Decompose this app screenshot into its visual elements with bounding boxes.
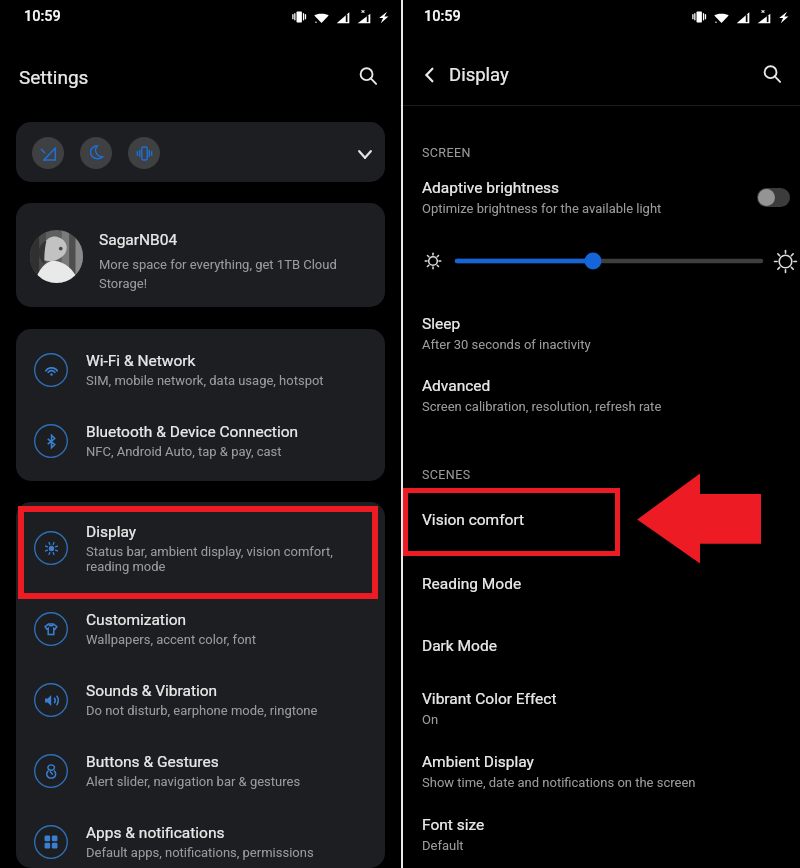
button[interactable]: Back [400, 34, 800, 105]
staticText: Ambient Display [422, 752, 534, 771]
staticText: Display [86, 522, 137, 541]
button[interactable]: Adaptive brightness [400, 170, 800, 220]
button[interactable]: Do not disturb [80, 137, 112, 169]
button[interactable]: Vision comfort [400, 503, 800, 539]
button[interactable]: SagarNB04 [16, 203, 385, 307]
staticText: Reading Mode [422, 574, 522, 593]
staticText: Sleep [422, 314, 461, 333]
staticText: Display [449, 63, 509, 86]
staticText: 10:59 [424, 7, 461, 25]
staticText: Optimize brightness for the available li… [422, 200, 662, 216]
button[interactable]: Expand [350, 139, 380, 169]
staticText: Default apps, notifications, permissions [86, 845, 314, 860]
staticText: Status bar, ambient display, vision comf… [86, 544, 333, 574]
staticText: Settings [19, 66, 89, 89]
button[interactable]: Ambient Display [400, 745, 800, 800]
staticText: After 30 seconds of inactivity [422, 336, 591, 352]
button[interactable]: Airplane mode [32, 137, 64, 169]
staticText: Sounds & Vibration [86, 681, 218, 700]
staticText: Alert slider, navigation bar & gestures [86, 774, 301, 789]
button[interactable]: Search [753, 55, 791, 93]
staticText: SCREEN [422, 145, 471, 160]
staticText: Dark Mode [422, 636, 497, 655]
staticText: Apps & notifications [86, 823, 225, 842]
button[interactable]: Advanced [400, 369, 800, 424]
staticText: Font size [422, 815, 485, 834]
button[interactable]: Display [16, 502, 385, 593]
button[interactable]: Apps & notifications [16, 806, 385, 868]
button[interactable]: Bluetooth & Device Connection [16, 405, 385, 476]
button[interactable]: Buttons & Gestures [16, 735, 385, 806]
staticText: Adaptive brightness [422, 178, 560, 197]
staticText: Vibrant Color Effect [422, 689, 557, 708]
button[interactable]: Vibrant Color Effect [400, 682, 800, 737]
button[interactable]: Vibrate [128, 137, 160, 169]
staticText: Wi-Fi & Network [86, 351, 196, 370]
staticText: SCENES [422, 467, 471, 482]
button[interactable]: Font size [400, 808, 800, 863]
button[interactable]: Dark Mode [400, 629, 800, 665]
button[interactable]: Customization [16, 593, 385, 664]
staticText: Bluetooth & Device Connection [86, 422, 299, 441]
staticText: SIM, mobile network, data usage, hotspot [86, 373, 324, 388]
staticText: SagarNB04 [99, 230, 178, 249]
staticText: 10:59 [24, 7, 61, 25]
staticText: Default [422, 837, 464, 853]
button[interactable]: Reading Mode [400, 567, 800, 603]
staticText: Buttons & Gestures [86, 752, 219, 771]
button[interactable]: Settings [0, 34, 400, 106]
staticText: Screen calibration, resolution, refresh … [422, 398, 662, 414]
staticText: Show time, date and notifications on the… [422, 774, 696, 790]
button[interactable]: Sounds & Vibration [16, 664, 385, 735]
staticText: NFC, Android Auto, tap & pay, cast [86, 444, 282, 459]
button[interactable]: Adaptive brightness toggle [757, 188, 790, 207]
staticText: More space for everything, get 1TB Cloud… [99, 254, 354, 292]
staticText: Customization [86, 610, 187, 629]
staticText: On [422, 711, 439, 727]
staticText: Wallpapers, accent color, font [86, 632, 256, 647]
button[interactable]: Airplane mode [16, 122, 385, 182]
button[interactable]: Brightness [455, 251, 765, 271]
button[interactable]: Back [414, 60, 444, 90]
staticText: Do not disturb, earphone mode, ringtone [86, 703, 318, 718]
staticText: Advanced [422, 376, 491, 395]
button[interactable]: Sleep [400, 307, 800, 362]
staticText: Vision comfort [422, 510, 525, 529]
button[interactable]: Search [349, 57, 387, 95]
button[interactable]: Wi-Fi & Network [16, 334, 385, 405]
